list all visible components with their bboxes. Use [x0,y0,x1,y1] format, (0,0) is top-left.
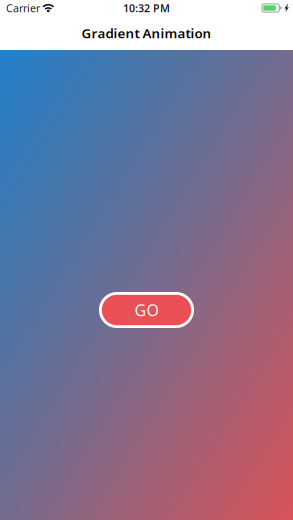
button[interactable]: GO [99,292,194,328]
staticText: Gradient Animation [81,24,211,42]
staticText: Carrier [6,1,40,15]
staticText: 10:32 PM [123,1,170,15]
staticText: GO [134,299,158,321]
